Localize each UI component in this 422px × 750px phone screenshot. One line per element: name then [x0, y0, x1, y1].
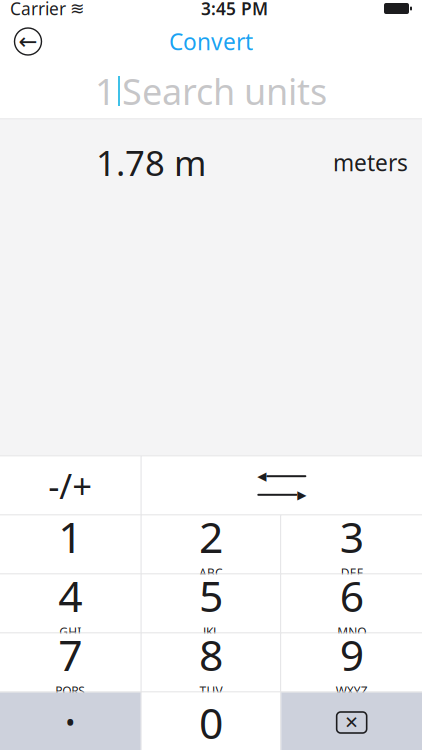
- staticText: TUV: [199, 683, 222, 699]
- staticText: PQRS: [55, 683, 85, 699]
- staticText: Convert: [169, 26, 253, 56]
- button[interactable]: 9: [281, 633, 422, 691]
- staticText: 1.78 m: [96, 139, 206, 185]
- staticText: MNO: [337, 624, 366, 640]
- staticText: 1: [95, 67, 116, 115]
- button[interactable]: 5: [142, 574, 280, 632]
- staticText: 3: [340, 508, 364, 565]
- button[interactable]: 7: [0, 633, 141, 691]
- staticText: •: [65, 705, 75, 740]
- staticText: Search units: [122, 67, 327, 115]
- staticText: 9: [340, 626, 364, 683]
- button[interactable]: 2: [142, 515, 280, 573]
- button[interactable]: 0: [142, 692, 280, 750]
- staticText: 1: [58, 508, 82, 565]
- staticText: WXYZ: [336, 683, 368, 699]
- button[interactable]: -/+: [0, 456, 141, 514]
- button[interactable]: 6: [281, 574, 422, 632]
- staticText: ◀: [257, 469, 266, 483]
- staticText: ✕: [344, 713, 359, 732]
- staticText: Carrier: [10, 0, 66, 20]
- button[interactable]: 1: [0, 515, 141, 573]
- staticText: 5: [199, 567, 223, 624]
- staticText: ≋: [70, 0, 85, 18]
- staticText: 0: [199, 694, 223, 750]
- staticText: 6: [340, 567, 364, 624]
- staticText: ←: [18, 29, 37, 54]
- staticText: DEF: [341, 565, 363, 581]
- staticText: 8: [199, 626, 223, 683]
- button[interactable]: 1: [0, 63, 422, 118]
- button[interactable]: 4: [0, 574, 141, 632]
- staticText: 2: [199, 508, 223, 565]
- staticText: ▶: [297, 488, 306, 502]
- button[interactable]: 8: [142, 633, 280, 691]
- staticText: meters: [333, 147, 408, 178]
- button[interactable]: Delete: [281, 692, 422, 750]
- staticText: ABC: [199, 565, 223, 581]
- staticText: 3:45 PM: [201, 0, 268, 20]
- staticText: GHI: [59, 624, 81, 640]
- staticText: 4: [58, 567, 82, 624]
- staticText: -/+: [48, 462, 92, 508]
- staticText: 7: [58, 626, 82, 683]
- staticText: JKL: [203, 624, 219, 640]
- button[interactable]: ◀: [142, 456, 422, 514]
- button[interactable]: 3: [281, 515, 422, 573]
- button[interactable]: Back: [0, 19, 56, 63]
- button[interactable]: •: [0, 692, 141, 750]
